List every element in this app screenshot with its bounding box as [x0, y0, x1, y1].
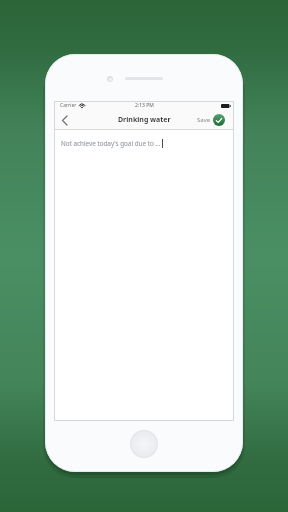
staticText: Carrier: [60, 102, 77, 109]
staticText: Save: [197, 116, 211, 124]
button[interactable]: Save: [197, 114, 225, 126]
staticText: Not achieve today's goal due to ...: [61, 139, 161, 148]
staticText: 2:13 PM: [135, 102, 154, 109]
button[interactable]: [58, 114, 70, 126]
button[interactable]: [130, 430, 158, 458]
button[interactable]: Not achieve today's goal due to ...: [54, 130, 234, 421]
staticText: Drinking water: [118, 115, 171, 125]
